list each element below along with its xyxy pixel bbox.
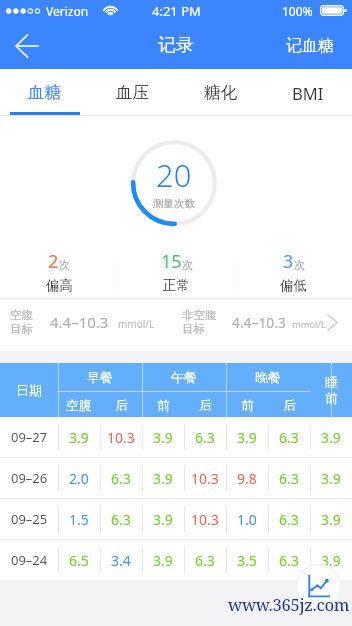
button[interactable]: 15 (118, 237, 235, 298)
staticText: mmol/L (118, 317, 155, 331)
staticText: Verizon (46, 3, 89, 19)
button[interactable]: BMI (264, 69, 352, 116)
staticText: 20 (156, 154, 192, 196)
staticText: 后 (115, 397, 128, 413)
staticText: 3.9 (153, 428, 173, 447)
staticText: 3 (283, 249, 294, 274)
staticText: 1.5 (69, 510, 89, 529)
staticText: 正常 (163, 277, 190, 294)
staticText: 10.3 (191, 469, 219, 488)
staticText: 6.3 (279, 510, 299, 529)
staticText: 09–27 (11, 428, 48, 446)
staticText: 10.3 (107, 428, 135, 447)
staticText: 血压 (116, 82, 149, 103)
button[interactable]: 09–27 (0, 417, 352, 457)
staticText: 次 (294, 258, 305, 272)
staticText: 3.4 (111, 551, 131, 570)
staticText: 记血糖 (286, 36, 334, 56)
staticText: 09–26 (11, 469, 48, 487)
staticText: 6.3 (195, 551, 215, 570)
button[interactable]: 血压 (88, 69, 176, 116)
staticText: 非空腹 目标 (182, 308, 217, 337)
staticText: 1.0 (237, 510, 257, 529)
staticText: 3.9 (321, 551, 341, 570)
staticText: 3.9 (69, 428, 89, 447)
staticText: 4:21 PM (152, 2, 201, 20)
staticText: www.365jz.com (228, 593, 350, 615)
button[interactable]: 非空腹 目标 (172, 299, 342, 345)
button[interactable]: 空腹 目标 (0, 299, 176, 345)
staticText: 前 (241, 397, 254, 413)
staticText: 晚餐 (255, 369, 281, 385)
staticText: 前 (157, 397, 170, 413)
staticText: 偏低 (280, 277, 307, 294)
staticText: 后 (283, 397, 296, 413)
staticText: 6.3 (111, 510, 131, 529)
staticText: 6.5 (69, 551, 89, 570)
button[interactable]: 09–26 (0, 458, 352, 498)
staticText: 3.9 (321, 428, 341, 447)
staticText: 空腹 目标 (10, 308, 33, 337)
staticText: 3.5 (237, 551, 257, 570)
staticText: 睡 前 (325, 374, 338, 407)
staticText: 3.9 (321, 510, 341, 529)
staticText: 次 (182, 258, 193, 272)
staticText: 测量次数 (153, 197, 195, 210)
staticText: 09–25 (11, 510, 48, 528)
staticText: 3.9 (153, 469, 173, 488)
button[interactable]: 血糖 (0, 69, 88, 116)
button[interactable]: 3 (235, 237, 352, 298)
staticText: mmol/L (292, 318, 326, 331)
staticText: 9.8 (237, 469, 257, 488)
staticText: BMI (292, 82, 324, 104)
staticText: 09–24 (11, 551, 48, 569)
staticText: 后 (199, 397, 212, 413)
button[interactable]: 糖化 (176, 69, 264, 116)
staticText: 3.9 (321, 469, 341, 488)
staticText: 记录 (158, 34, 194, 57)
staticText: 4.4–10.3 (50, 312, 109, 332)
staticText: 午餐 (171, 369, 197, 385)
staticText: 空腹 (66, 397, 92, 413)
staticText: 6.3 (195, 428, 215, 447)
staticText: 100% (282, 3, 313, 19)
staticText: 6.3 (279, 469, 299, 488)
staticText: 2 (48, 249, 59, 274)
button[interactable]: Back (3, 22, 51, 69)
staticText: 6.3 (279, 551, 299, 570)
staticText: 10.3 (191, 510, 219, 529)
staticText: 15 (161, 249, 182, 274)
button[interactable]: 09–24 (0, 540, 352, 580)
staticText: 2.0 (69, 469, 89, 488)
button[interactable]: 记血糖 (272, 22, 352, 69)
staticText: 偏高 (46, 277, 73, 294)
staticText: 次 (59, 258, 70, 272)
button[interactable]: 2 (0, 237, 118, 298)
button[interactable]: 09–25 (0, 499, 352, 539)
staticText: 糖化 (204, 82, 237, 103)
staticText: 早餐 (87, 369, 113, 385)
staticText: 6.3 (111, 469, 131, 488)
staticText: 3.9 (153, 510, 173, 529)
staticText: 日期 (16, 382, 42, 398)
button[interactable]: Chart (296, 564, 341, 609)
staticText: 3.9 (237, 428, 257, 447)
staticText: 3.9 (153, 551, 173, 570)
staticText: 血糖 (28, 82, 61, 103)
staticText: 6.3 (279, 428, 299, 447)
staticText: 4.4–10.3 (232, 313, 286, 332)
